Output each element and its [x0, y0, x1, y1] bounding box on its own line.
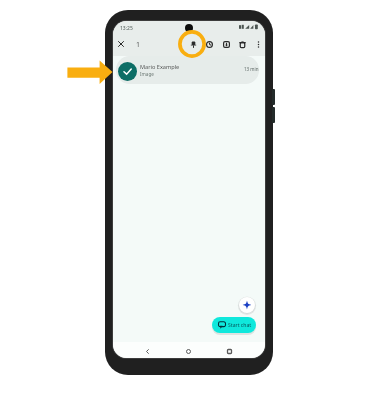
button[interactable]: Archive — [219, 37, 233, 51]
button[interactable]: Back — [140, 344, 154, 358]
staticText: Image — [140, 71, 154, 77]
button[interactable]: Home — [181, 344, 195, 358]
button[interactable]: Close — [114, 37, 128, 51]
staticText: Start chat — [228, 322, 252, 329]
button[interactable]: Pin — [186, 37, 200, 51]
staticText: 13:25 — [120, 25, 133, 32]
button[interactable]: Mario Example — [116, 56, 259, 84]
button[interactable]: Start chat — [212, 317, 256, 333]
staticText: Mario Example — [140, 63, 180, 71]
button[interactable]: More options — [251, 37, 265, 51]
staticText: 13 min — [244, 66, 259, 72]
button[interactable]: Delete — [235, 37, 249, 51]
button[interactable]: Gemini — [239, 297, 255, 313]
button[interactable]: Snooze — [202, 37, 216, 51]
staticText: 1 — [136, 40, 141, 50]
button[interactable]: Recent apps — [222, 344, 236, 358]
